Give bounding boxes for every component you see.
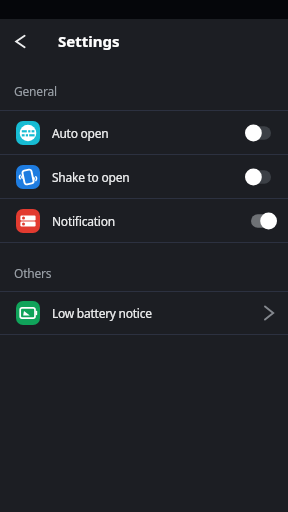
staticText: Shake to open — [52, 169, 130, 185]
button[interactable]: Notification — [0, 199, 288, 242]
button[interactable] — [245, 168, 277, 186]
button[interactable]: Auto open — [0, 111, 288, 154]
staticText: Low battery notice — [52, 305, 152, 321]
staticText: General — [14, 83, 57, 99]
staticText: Others — [14, 265, 52, 281]
button[interactable] — [245, 124, 277, 142]
staticText: Notification — [52, 213, 115, 229]
staticText: Auto open — [52, 125, 109, 141]
button[interactable]: Shake to open — [0, 155, 288, 198]
button[interactable] — [0, 19, 44, 63]
button[interactable]: Low battery notice — [0, 292, 288, 334]
staticText: Settings — [58, 31, 120, 51]
button[interactable] — [245, 212, 277, 230]
